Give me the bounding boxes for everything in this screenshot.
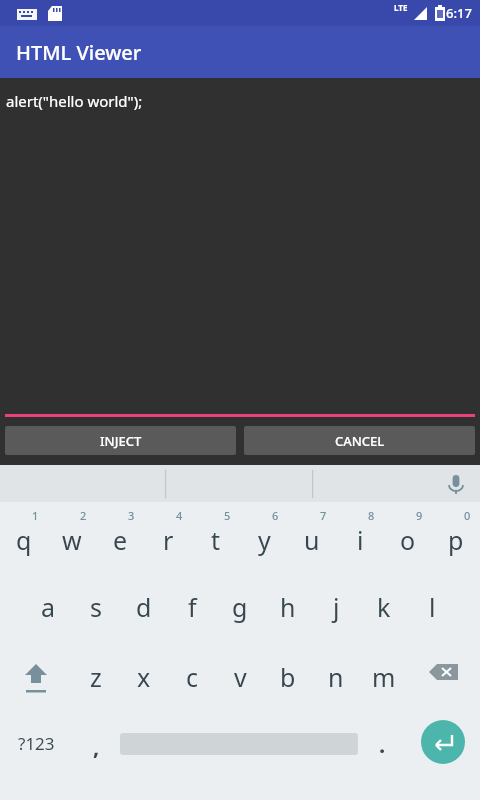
staticText: ?123 [18, 732, 55, 755]
button[interactable]: Voice input [440, 468, 472, 500]
button[interactable]: v [216, 642, 264, 712]
button[interactable]: a [24, 572, 72, 642]
staticText: p [448, 523, 464, 557]
staticText: 0 [464, 508, 471, 523]
button[interactable]: 1 [0, 502, 48, 572]
staticText: q [16, 523, 32, 557]
button[interactable]: 3 [96, 502, 144, 572]
staticText: 8 [368, 508, 375, 523]
button[interactable]: x [120, 642, 168, 712]
button[interactable]: 4 [144, 502, 192, 572]
staticText: x [137, 660, 151, 694]
button[interactable]: z [72, 642, 120, 712]
staticText: j [333, 590, 340, 624]
staticText: alert("hello world"); [6, 91, 143, 111]
button[interactable]: g [216, 572, 264, 642]
staticText: c [186, 660, 199, 694]
staticText: a [41, 590, 56, 624]
button[interactable]: 2 [48, 502, 96, 572]
button[interactable]: ?123 [0, 712, 72, 787]
button[interactable]: b [264, 642, 312, 712]
button[interactable]: f [168, 572, 216, 642]
staticText: LTE [394, 2, 408, 13]
staticText: , [93, 731, 100, 761]
staticText: v [234, 660, 247, 694]
staticText: z [90, 660, 102, 694]
button[interactable]: Enter [406, 712, 480, 787]
staticText: 2 [80, 508, 87, 523]
button[interactable]: l [408, 572, 456, 642]
staticText: . [379, 729, 386, 759]
button[interactable]: 7 [288, 502, 336, 572]
staticText: i [357, 523, 364, 557]
button[interactable] [120, 712, 358, 787]
button[interactable]: INJECT [5, 426, 236, 455]
staticText: HTML Viewer [16, 39, 142, 66]
button[interactable]: j [312, 572, 360, 642]
button[interactable]: 9 [384, 502, 432, 572]
button[interactable]: c [168, 642, 216, 712]
staticText: f [188, 590, 197, 624]
staticText: d [136, 590, 152, 624]
button[interactable]: 5 [192, 502, 240, 572]
staticText: o [400, 523, 416, 557]
staticText: 6 [272, 508, 279, 523]
button[interactable]: m [360, 642, 408, 712]
staticText: r [163, 523, 174, 557]
button[interactable]: . [358, 712, 406, 787]
staticText: b [280, 660, 296, 694]
staticText: e [113, 523, 128, 557]
staticText: l [429, 590, 436, 624]
button[interactable]: h [264, 572, 312, 642]
staticText: 3 [128, 508, 135, 523]
button[interactable]: CANCEL [244, 426, 475, 455]
staticText: 6:17 [446, 4, 472, 22]
button[interactable]: 8 [336, 502, 384, 572]
staticText: g [232, 590, 248, 624]
staticText: CANCEL [335, 432, 385, 450]
staticText: m [372, 660, 396, 694]
button[interactable]: s [72, 572, 120, 642]
staticText: w [62, 523, 82, 557]
staticText: u [304, 523, 320, 557]
button[interactable]: n [312, 642, 360, 712]
staticText: 4 [176, 508, 183, 523]
button[interactable]: Backspace [408, 642, 480, 712]
staticText: s [90, 590, 102, 624]
staticText: INJECT [100, 432, 142, 450]
button[interactable]: Shift [0, 642, 72, 712]
button[interactable]: k [360, 572, 408, 642]
button[interactable]: 6 [240, 502, 288, 572]
staticText: 7 [320, 508, 327, 523]
staticText: t [211, 523, 221, 557]
staticText: h [280, 590, 296, 624]
button[interactable]: 0 [432, 502, 480, 572]
staticText: k [377, 590, 391, 624]
staticText: n [328, 660, 344, 694]
button[interactable]: , [72, 712, 120, 787]
button[interactable]: d [120, 572, 168, 642]
staticText: 9 [416, 508, 423, 523]
button[interactable]: alert("hello world"); [0, 78, 480, 414]
staticText: y [258, 523, 271, 557]
staticText: 1 [32, 508, 39, 523]
staticText: 5 [224, 508, 231, 523]
